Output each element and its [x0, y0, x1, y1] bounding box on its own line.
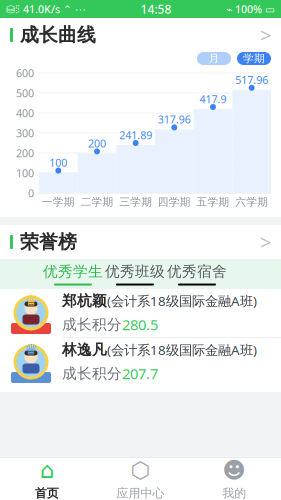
staticText: 五学期 [196, 195, 229, 208]
staticText: (会计系18级国际金融A班) [107, 341, 257, 359]
button[interactable]: 优秀学生 [42, 259, 104, 289]
staticText: 317.96 [158, 112, 191, 126]
staticText: 200 [16, 146, 34, 160]
staticText: 280.5 [122, 315, 158, 334]
staticText: 四学期 [158, 195, 191, 208]
staticText: 成长积分 [62, 315, 122, 333]
staticText: 优秀班级 [105, 262, 165, 280]
staticText: 三学期 [119, 195, 152, 208]
staticText: 200 [88, 136, 106, 150]
button[interactable]: 优秀宿舍 [166, 259, 228, 289]
button[interactable]: 优秀班级 [104, 259, 166, 289]
button[interactable]: 学期 [237, 52, 271, 65]
button[interactable]: ♛ [0, 338, 281, 386]
staticText: 成长积分 [62, 364, 122, 382]
button[interactable]: 月 [197, 52, 231, 65]
staticText: 优秀宿舍 [167, 262, 227, 280]
button[interactable]: ♛ [0, 289, 281, 338]
staticText: > [260, 22, 271, 48]
staticText: > [260, 229, 271, 255]
staticText: 300 [16, 126, 34, 140]
staticText: 0 [28, 186, 34, 200]
button[interactable]: 成长曲线 [0, 18, 281, 52]
staticText: 100 [49, 155, 67, 170]
staticText: ⌂ [40, 457, 54, 483]
button[interactable]: ⬡ [94, 459, 187, 499]
staticText: ♛ [24, 292, 37, 309]
staticText: 500 [16, 86, 34, 100]
staticText: 400 [16, 106, 34, 120]
staticText: 我的 [222, 486, 246, 500]
staticText: ⛁⦙⫶ 41.0K/s ⌃ ⋯ [6, 2, 86, 16]
staticText: 林逸凡 [62, 341, 107, 359]
staticText: 应用中心 [116, 486, 164, 500]
staticText: 517.96 [235, 73, 268, 87]
staticText: 成长曲线 [20, 23, 96, 46]
staticText: 241.89 [119, 128, 152, 142]
staticText: 郑杭颖 [62, 292, 107, 310]
staticText: ♛ [24, 341, 37, 358]
staticText: 207.7 [122, 364, 158, 383]
staticText: 14:58 [140, 1, 171, 17]
button[interactable]: ☻ [187, 459, 281, 499]
staticText: 荣誉榜 [20, 230, 77, 253]
button[interactable]: ⌂ [0, 459, 94, 499]
staticText: 二学期 [80, 195, 113, 208]
staticText: 100 [16, 166, 34, 180]
button[interactable]: 荣誉榜 [0, 225, 281, 259]
staticText: ⬡ [130, 457, 150, 483]
staticText: 首页 [35, 486, 59, 500]
staticText: 一学期 [42, 195, 75, 208]
staticText: 417.9 [199, 92, 226, 106]
staticText: (会计系18级国际金融A班) [107, 292, 257, 310]
staticText: 优秀学生 [43, 262, 103, 280]
staticText: 月 [208, 52, 219, 65]
staticText: 学期 [243, 52, 265, 65]
staticText: 六学期 [235, 195, 268, 208]
staticText: ☻ [222, 457, 246, 483]
staticText: 600 [16, 66, 34, 80]
staticText: ⌁ 100% ▭ [226, 2, 275, 16]
